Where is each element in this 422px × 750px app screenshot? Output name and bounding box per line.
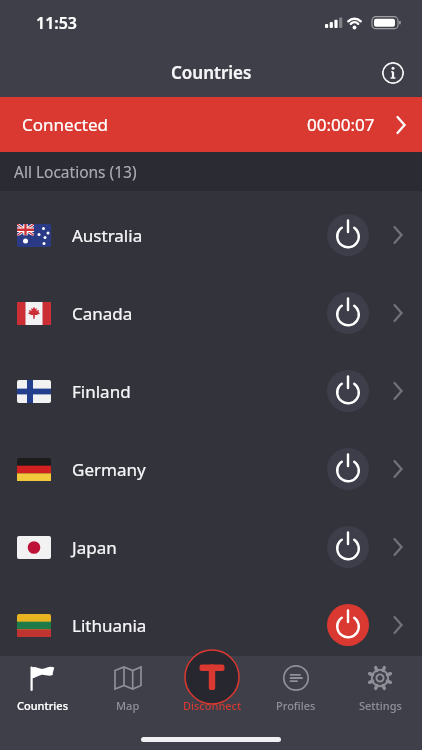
staticText: 00:00:07 xyxy=(307,113,375,136)
button[interactable] xyxy=(327,292,369,334)
staticText: Profiles xyxy=(276,698,316,713)
staticText: Disconnect xyxy=(183,698,242,713)
staticText: Countries xyxy=(17,698,68,713)
button[interactable] xyxy=(327,526,369,568)
button[interactable]: Canada xyxy=(0,274,422,352)
staticText: Canada xyxy=(72,302,133,325)
staticText: Settings xyxy=(359,698,402,713)
button[interactable] xyxy=(382,62,404,84)
staticText: Finland xyxy=(72,380,131,403)
button[interactable]: Finland xyxy=(0,352,422,430)
button[interactable]: Japan xyxy=(0,508,422,586)
button[interactable]: Connected xyxy=(0,97,422,152)
staticText: Japan xyxy=(72,536,117,559)
button[interactable]: Lithuania xyxy=(0,586,422,664)
button[interactable] xyxy=(327,448,369,490)
staticText: All Locations (13) xyxy=(14,161,137,182)
staticText: Map xyxy=(116,698,140,713)
button[interactable] xyxy=(327,604,369,646)
staticText: Germany xyxy=(72,458,146,481)
button[interactable]: Disconnect xyxy=(170,656,254,750)
button[interactable]: Settings xyxy=(338,656,422,750)
button[interactable] xyxy=(327,370,369,412)
button[interactable]: Map xyxy=(85,656,170,750)
button[interactable]: Profiles xyxy=(254,656,338,750)
staticText: Australia xyxy=(72,224,143,247)
staticText: Lithuania xyxy=(72,614,147,637)
staticText: Countries xyxy=(171,61,252,84)
staticText: 11:53 xyxy=(36,12,78,34)
staticText: Connected xyxy=(22,113,108,136)
button[interactable] xyxy=(327,214,369,256)
button[interactable]: Australia xyxy=(0,196,422,274)
button[interactable]: Germany xyxy=(0,430,422,508)
button[interactable]: Countries xyxy=(0,656,85,750)
